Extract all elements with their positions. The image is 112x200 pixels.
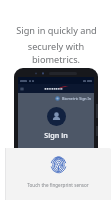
staticText: Sign in <box>44 130 68 140</box>
button[interactable]: Fingerprint sensor <box>50 156 67 173</box>
staticText: Touch the fingerprint sensor <box>27 182 89 188</box>
button[interactable]: Menu <box>20 87 24 91</box>
staticText: Biometric Sign In <box>62 96 91 101</box>
button[interactable]: Sign in <box>44 107 68 140</box>
staticText: securely with biometrics. <box>9 40 103 66</box>
button[interactable]: Biometric Sign In <box>55 96 91 101</box>
staticText: Sign in quickly and <box>16 24 97 37</box>
